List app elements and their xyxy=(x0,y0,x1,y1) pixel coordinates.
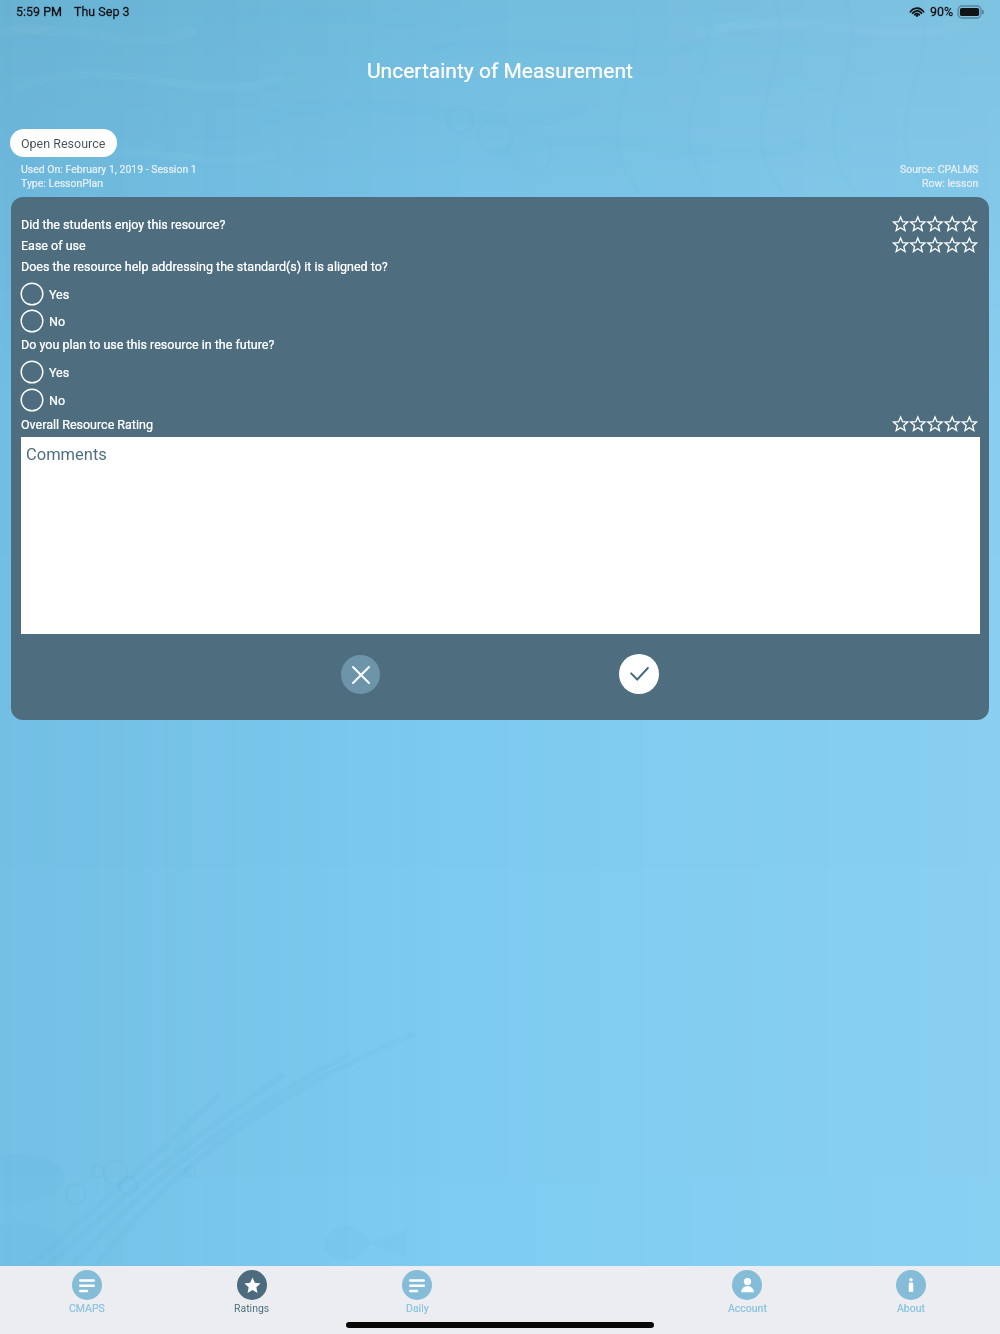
button[interactable]: Rate: Ease of use xyxy=(892,236,978,254)
button[interactable]: Yes xyxy=(20,282,70,306)
button[interactable]: Open Resource xyxy=(10,129,117,157)
staticText: Ratings xyxy=(234,1302,270,1314)
staticText: Yes xyxy=(49,287,70,302)
button[interactable]: CMAPS xyxy=(32,1266,142,1320)
staticText: Type: LessonPlan xyxy=(21,177,104,189)
staticText: 5:59 PM xyxy=(16,4,63,19)
button[interactable]: No xyxy=(20,388,66,412)
staticText: CMAPS xyxy=(69,1302,105,1314)
staticText: Daily xyxy=(406,1302,429,1314)
button[interactable]: Cancel xyxy=(341,655,380,694)
staticText: No xyxy=(49,393,66,408)
staticText: No xyxy=(49,314,66,329)
button[interactable]: Daily xyxy=(362,1266,472,1320)
staticText: Uncertainty of Measurement xyxy=(367,59,633,84)
button[interactable]: About xyxy=(856,1266,966,1320)
button[interactable]: Ratings xyxy=(197,1266,307,1320)
staticText: About xyxy=(897,1302,925,1314)
staticText: Thu Sep 3 xyxy=(74,4,130,19)
button[interactable]: No xyxy=(20,309,66,333)
button[interactable]: Save xyxy=(619,654,659,694)
staticText: Account xyxy=(728,1302,767,1314)
staticText: Ease of use xyxy=(21,238,86,253)
staticText: Used On: February 1, 2019 - Session 1 xyxy=(21,163,197,175)
staticText: Yes xyxy=(49,365,70,380)
staticText: Does the resource help addressing the st… xyxy=(21,259,388,274)
button[interactable]: Comments xyxy=(21,437,980,634)
button[interactable]: Yes xyxy=(20,360,70,384)
staticText: Did the students enjoy this resource? xyxy=(21,217,226,232)
button[interactable]: Account xyxy=(692,1266,802,1320)
staticText: Source: CPALMS xyxy=(900,163,979,175)
button[interactable]: Rate: Overall Resource Rating xyxy=(892,415,978,433)
staticText: Row: lesson xyxy=(922,177,979,189)
staticText: Do you plan to use this resource in the … xyxy=(21,337,275,352)
staticText: 90% xyxy=(930,4,954,19)
staticText: Comments xyxy=(26,445,107,464)
staticText: Overall Resource Rating xyxy=(21,417,153,432)
staticText: Open Resource xyxy=(21,136,106,151)
button[interactable]: Rate: Did the students enjoy this resour… xyxy=(892,215,978,233)
